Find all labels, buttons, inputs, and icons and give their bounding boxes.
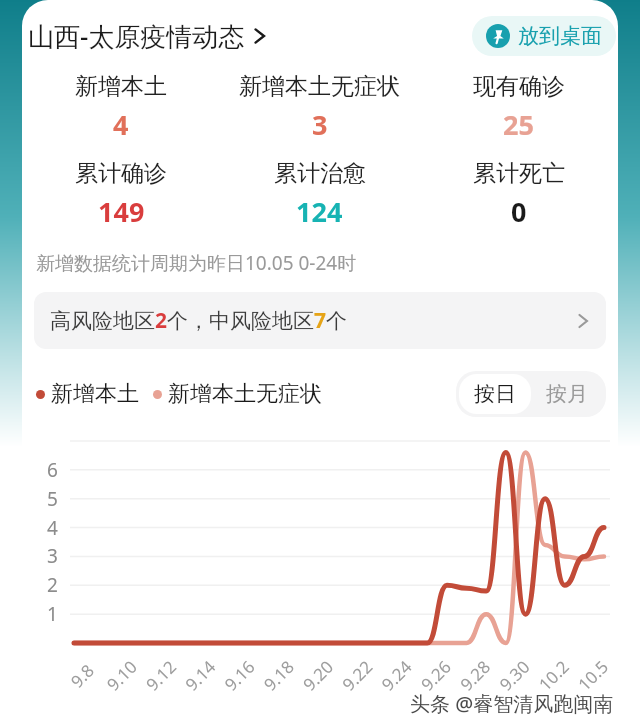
staticText: 0: [511, 193, 527, 230]
staticText: 现有确诊: [473, 72, 565, 101]
staticText: 新增本土: [75, 72, 167, 101]
staticText: 新增本土无症状: [239, 72, 400, 101]
staticText: 3: [312, 106, 328, 143]
staticText: 按月: [546, 381, 588, 407]
staticText: 149: [98, 193, 145, 230]
staticText: 累计确诊: [75, 159, 167, 188]
staticText: 按日: [474, 381, 516, 407]
staticText: 累计治愈: [274, 159, 366, 188]
staticText: 25: [503, 106, 534, 143]
staticText: 124: [296, 193, 343, 230]
staticText: 高风险地区2个，中风险地区7个: [50, 306, 348, 335]
staticText: 新增数据统计周期为昨日10.05 0-24时: [36, 250, 357, 276]
staticText: 新增本土: [51, 380, 139, 408]
staticText: 累计死亡: [473, 159, 565, 188]
button[interactable]: 高风险地区2个，中风险地区7个: [34, 292, 606, 349]
button[interactable]: 按月: [531, 374, 603, 414]
staticText: 新增本土无症状: [168, 380, 322, 408]
button[interactable]: 山西-太原疫情动态: [28, 14, 268, 58]
staticText: 山西-太原疫情动态: [28, 18, 245, 54]
button[interactable]: 按日: [459, 374, 531, 414]
staticText: 放到桌面: [518, 23, 602, 49]
staticText: 4: [113, 106, 129, 143]
button[interactable]: 放到桌面: [472, 16, 616, 56]
